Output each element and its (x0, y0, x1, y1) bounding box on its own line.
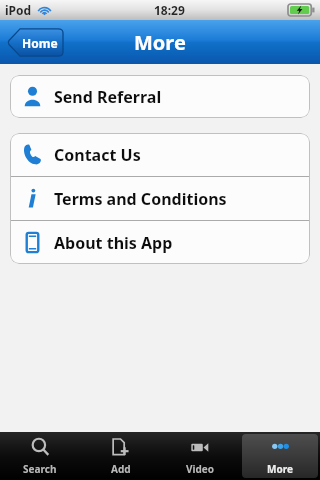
staticText: Video (186, 462, 215, 476)
staticText: Home (22, 35, 58, 51)
staticText: Search (23, 462, 57, 476)
staticText: Terms and Conditions (54, 188, 227, 210)
button[interactable]: Search (0, 432, 80, 480)
staticText: More (134, 29, 186, 56)
button[interactable]: Send Referral (10, 75, 310, 118)
staticText: iPod (5, 2, 32, 18)
staticText: More (267, 462, 293, 476)
button[interactable]: More (242, 434, 318, 478)
button[interactable]: Back to Home (7, 28, 63, 57)
button[interactable]: Contact Us (10, 133, 310, 176)
button[interactable]: Add (80, 432, 160, 480)
staticText: About this App (54, 232, 173, 254)
staticText: 18:29 (154, 2, 185, 18)
button[interactable]: Terms and Conditions (10, 177, 310, 220)
button[interactable]: About this App (10, 221, 310, 264)
staticText: Send Referral (54, 86, 162, 108)
staticText: Contact Us (54, 144, 141, 166)
button[interactable]: Video (160, 432, 240, 480)
staticText: Add (111, 462, 131, 476)
